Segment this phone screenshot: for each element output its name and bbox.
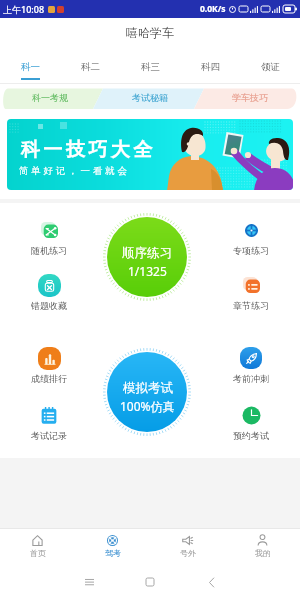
- staticText: 科一考规: [32, 92, 68, 103]
- staticText: 顺序练习: [122, 245, 172, 261]
- button[interactable]: 顺序练习: [102, 212, 192, 302]
- button[interactable]: 专项练习: [219, 217, 283, 255]
- button[interactable]: 错题收藏: [17, 272, 81, 310]
- staticText: 考试记录: [31, 430, 67, 440]
- button[interactable]: 考前冲刺: [219, 345, 283, 383]
- button[interactable]: 科一: [2, 46, 58, 84]
- staticText: 科四: [201, 61, 220, 73]
- button[interactable]: Recent apps: [76, 569, 102, 595]
- staticText: 学车技巧: [232, 92, 268, 103]
- button[interactable]: 学车技巧: [200, 85, 300, 109]
- staticText: 章节练习: [233, 300, 269, 310]
- button[interactable]: 科一考规: [0, 85, 100, 109]
- button[interactable]: 首页: [0, 528, 75, 563]
- staticText: 考试秘籍: [132, 92, 168, 103]
- button[interactable]: 我的: [225, 528, 300, 563]
- button[interactable]: 考试记录: [17, 402, 81, 440]
- button[interactable]: 预约考试: [219, 402, 283, 440]
- staticText: 驾考: [105, 548, 121, 558]
- staticText: 上午10:08: [3, 3, 45, 15]
- staticText: 0.0K/s: [200, 3, 226, 15]
- button[interactable]: 考试秘籍: [100, 85, 200, 109]
- staticText: 专项练习: [233, 245, 269, 255]
- button[interactable]: 驾考: [75, 528, 150, 563]
- staticText: 号外: [180, 548, 196, 558]
- staticText: 领证: [261, 61, 280, 73]
- staticText: 科一技巧大全: [19, 138, 154, 162]
- staticText: 成绩排行: [31, 373, 67, 383]
- staticText: 预约考试: [233, 430, 269, 440]
- staticText: 科三: [141, 61, 160, 73]
- staticText: 考前冲刺: [233, 373, 269, 383]
- button[interactable]: 号外: [150, 528, 225, 563]
- button[interactable]: 科一技巧大全: [7, 119, 293, 190]
- staticText: 错题收藏: [31, 300, 67, 310]
- staticText: 嘻哈学车: [126, 25, 174, 40]
- button[interactable]: 领证: [242, 46, 298, 84]
- staticText: 首页: [30, 548, 46, 558]
- button[interactable]: 成绩排行: [17, 345, 81, 383]
- button[interactable]: 章节练习: [219, 272, 283, 310]
- button[interactable]: 科二: [62, 46, 118, 84]
- button[interactable]: Back: [198, 569, 224, 595]
- button[interactable]: 模拟考试: [102, 347, 192, 437]
- staticText: 科二: [81, 61, 100, 73]
- button[interactable]: 科四: [182, 46, 238, 84]
- staticText: 随机练习: [31, 245, 67, 255]
- staticText: 科一: [21, 61, 40, 73]
- staticText: 简单好记，一看就会: [19, 165, 130, 177]
- staticText: 模拟考试: [123, 380, 173, 396]
- button[interactable]: 科三: [122, 46, 178, 84]
- staticText: 我的: [255, 548, 271, 558]
- button[interactable]: Home: [137, 569, 163, 595]
- staticText: 1/1325: [128, 263, 167, 279]
- button[interactable]: 随机练习: [17, 217, 81, 255]
- staticText: 100%仿真: [120, 398, 175, 414]
